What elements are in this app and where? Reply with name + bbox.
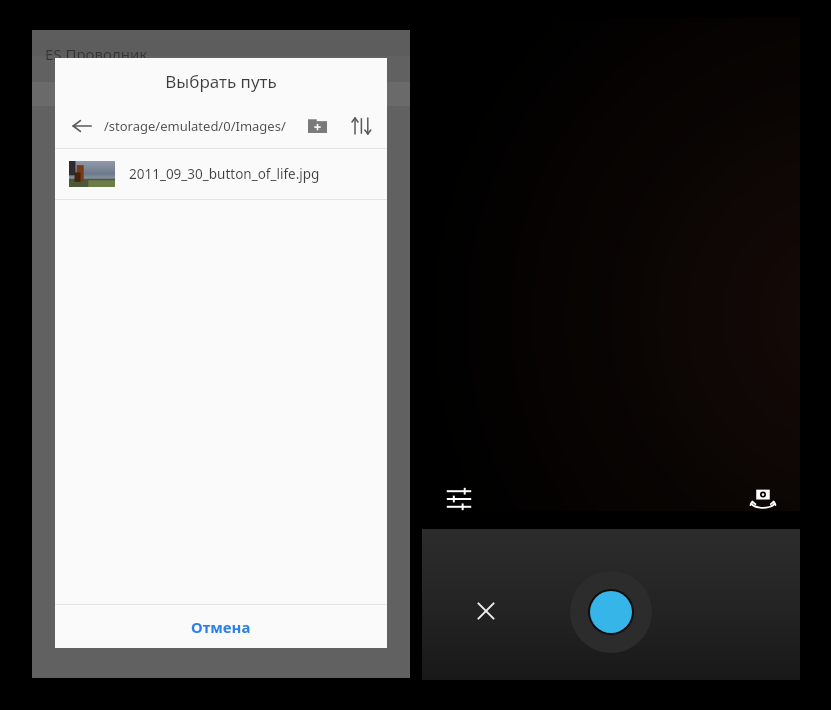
- staticText: ES Проводник: [45, 44, 148, 64]
- staticText: Отмена: [191, 617, 251, 637]
- button[interactable]: Close: [466, 591, 506, 631]
- button[interactable]: Settings: [438, 478, 480, 520]
- button[interactable]: 2011_09_30_button_of_life.jpg: [55, 149, 387, 199]
- button[interactable]: Sort: [349, 114, 373, 138]
- button[interactable]: Back: [69, 113, 95, 139]
- button[interactable]: Shutter: [570, 571, 652, 653]
- button[interactable]: New folder: [305, 114, 329, 138]
- staticText: 2011_09_30_button_of_life.jpg: [129, 165, 320, 183]
- staticText: Выбрать путь: [165, 70, 277, 93]
- button[interactable]: Switch camera: [742, 478, 784, 520]
- button[interactable]: Отмена: [55, 605, 387, 648]
- staticText: /storage/emulated/0/Images/: [104, 117, 305, 135]
